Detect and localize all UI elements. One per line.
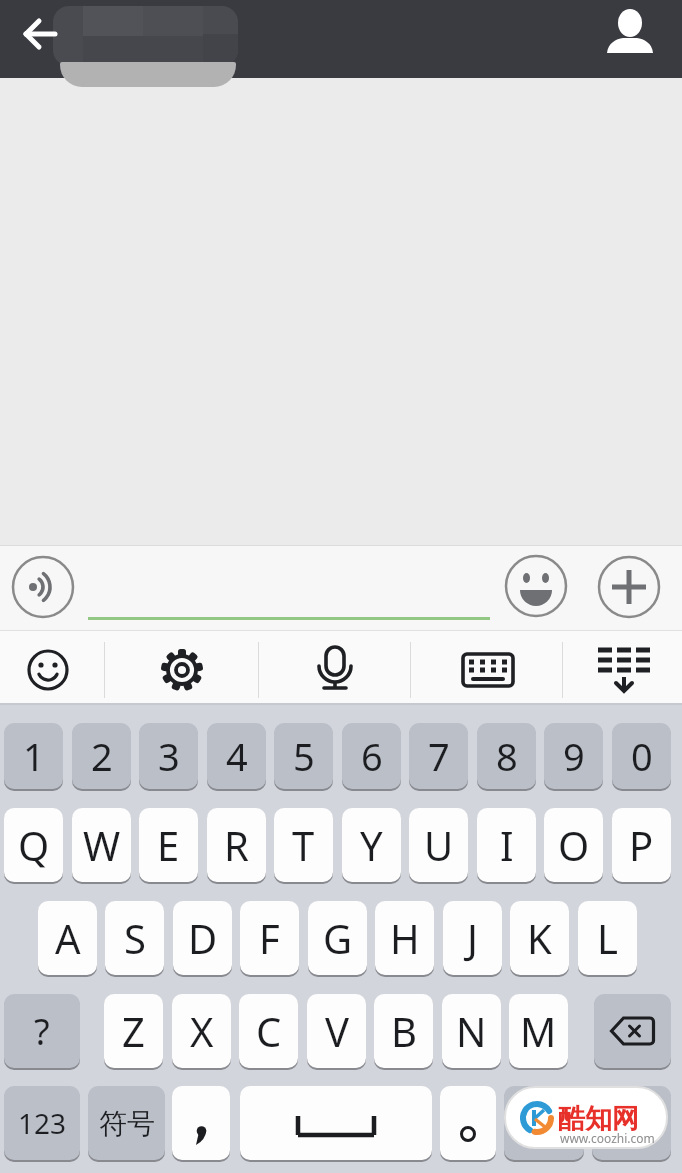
button[interactable]: 5 xyxy=(274,723,333,789)
button[interactable]: P xyxy=(612,808,671,882)
button[interactable] xyxy=(562,631,682,703)
button[interactable]: ? xyxy=(4,994,80,1068)
button[interactable] xyxy=(240,1086,432,1160)
staticText: A xyxy=(55,911,81,965)
button[interactable]: J xyxy=(443,901,502,975)
button[interactable]: I xyxy=(477,808,536,882)
button[interactable]: F xyxy=(240,901,299,975)
staticText: H xyxy=(390,911,420,965)
button[interactable] xyxy=(505,555,567,617)
staticText: J xyxy=(467,911,478,965)
button[interactable]: H xyxy=(375,901,434,975)
button[interactable]: 4 xyxy=(207,723,266,789)
staticText: R xyxy=(224,818,249,872)
staticText: 1 xyxy=(23,730,45,782)
button[interactable]: 9 xyxy=(544,723,603,789)
staticText: O xyxy=(558,818,590,872)
staticText: E xyxy=(157,818,180,872)
staticText: P xyxy=(629,818,654,872)
staticText: 4 xyxy=(226,730,248,782)
staticText: Y xyxy=(360,818,383,872)
button[interactable]: Z xyxy=(104,994,163,1068)
button[interactable] xyxy=(12,556,74,618)
button[interactable]: 7 xyxy=(409,723,468,789)
button[interactable]: X xyxy=(172,994,231,1068)
button[interactable]: O xyxy=(544,808,603,882)
button[interactable]: 0 xyxy=(612,723,671,789)
button[interactable]: W xyxy=(72,808,131,882)
staticText: X xyxy=(190,1004,214,1058)
staticText: B xyxy=(391,1004,417,1058)
button[interactable]: Q xyxy=(4,808,63,882)
button[interactable] xyxy=(592,1086,671,1160)
button[interactable]: A xyxy=(38,901,97,975)
button[interactable] xyxy=(104,631,258,703)
staticText: G xyxy=(323,911,353,965)
button[interactable] xyxy=(258,631,410,703)
staticText: 3 xyxy=(158,730,180,782)
staticText: ? xyxy=(34,1007,50,1056)
button[interactable] xyxy=(504,1086,584,1160)
button[interactable]: T xyxy=(274,808,333,882)
button[interactable]: 符号 xyxy=(88,1086,165,1160)
button[interactable]: S xyxy=(105,901,164,975)
button[interactable]: G xyxy=(308,901,367,975)
button[interactable] xyxy=(598,556,660,618)
staticText: 6 xyxy=(361,730,383,782)
button[interactable]: C xyxy=(239,994,298,1068)
staticText: 7 xyxy=(428,730,450,782)
staticText: K xyxy=(527,911,552,965)
button[interactable]: R xyxy=(207,808,266,882)
button[interactable]: Y xyxy=(342,808,401,882)
staticText: L xyxy=(597,911,618,965)
button[interactable]: N xyxy=(442,994,501,1068)
staticText: T xyxy=(292,818,315,872)
staticText: 酷知网 xyxy=(558,1102,639,1136)
button[interactable]: B xyxy=(374,994,433,1068)
staticText: M xyxy=(520,1004,557,1058)
staticText: www.coozhi.com xyxy=(560,1130,655,1146)
staticText: S xyxy=(124,911,146,965)
staticText: 5 xyxy=(293,730,315,782)
staticText: C xyxy=(256,1004,282,1058)
button[interactable] xyxy=(172,1086,230,1160)
staticText: Q xyxy=(18,818,50,872)
button[interactable]: V xyxy=(307,994,366,1068)
staticText: W xyxy=(83,818,121,872)
button[interactable]: U xyxy=(409,808,468,882)
staticText: U xyxy=(424,818,454,872)
button[interactable]: 1 xyxy=(4,723,63,789)
button[interactable]: M xyxy=(509,994,568,1068)
button[interactable] xyxy=(600,2,660,60)
button[interactable]: 8 xyxy=(477,723,536,789)
staticText: 符号 xyxy=(99,1106,155,1141)
button[interactable]: K xyxy=(510,901,569,975)
staticText: 9 xyxy=(563,730,585,782)
staticText: 123 xyxy=(18,1104,67,1142)
button[interactable]: D xyxy=(173,901,232,975)
button[interactable]: 123 xyxy=(4,1086,80,1160)
button[interactable] xyxy=(6,3,62,59)
staticText: Z xyxy=(122,1004,145,1058)
button[interactable]: 6 xyxy=(342,723,401,789)
button[interactable] xyxy=(88,556,490,620)
staticText: 8 xyxy=(496,730,518,782)
button[interactable]: E xyxy=(139,808,198,882)
staticText: V xyxy=(325,1004,349,1058)
staticText: F xyxy=(259,911,280,965)
staticText: 2 xyxy=(91,730,113,782)
button[interactable] xyxy=(440,1086,496,1160)
staticText: I xyxy=(500,818,514,872)
button[interactable]: 3 xyxy=(139,723,198,789)
button[interactable] xyxy=(410,631,562,703)
staticText: N xyxy=(456,1004,487,1058)
button[interactable]: 2 xyxy=(72,723,131,789)
button[interactable] xyxy=(594,994,671,1068)
button[interactable] xyxy=(0,631,104,703)
staticText: 0 xyxy=(631,730,653,782)
button[interactable]: L xyxy=(578,901,637,975)
staticText: D xyxy=(188,911,218,965)
